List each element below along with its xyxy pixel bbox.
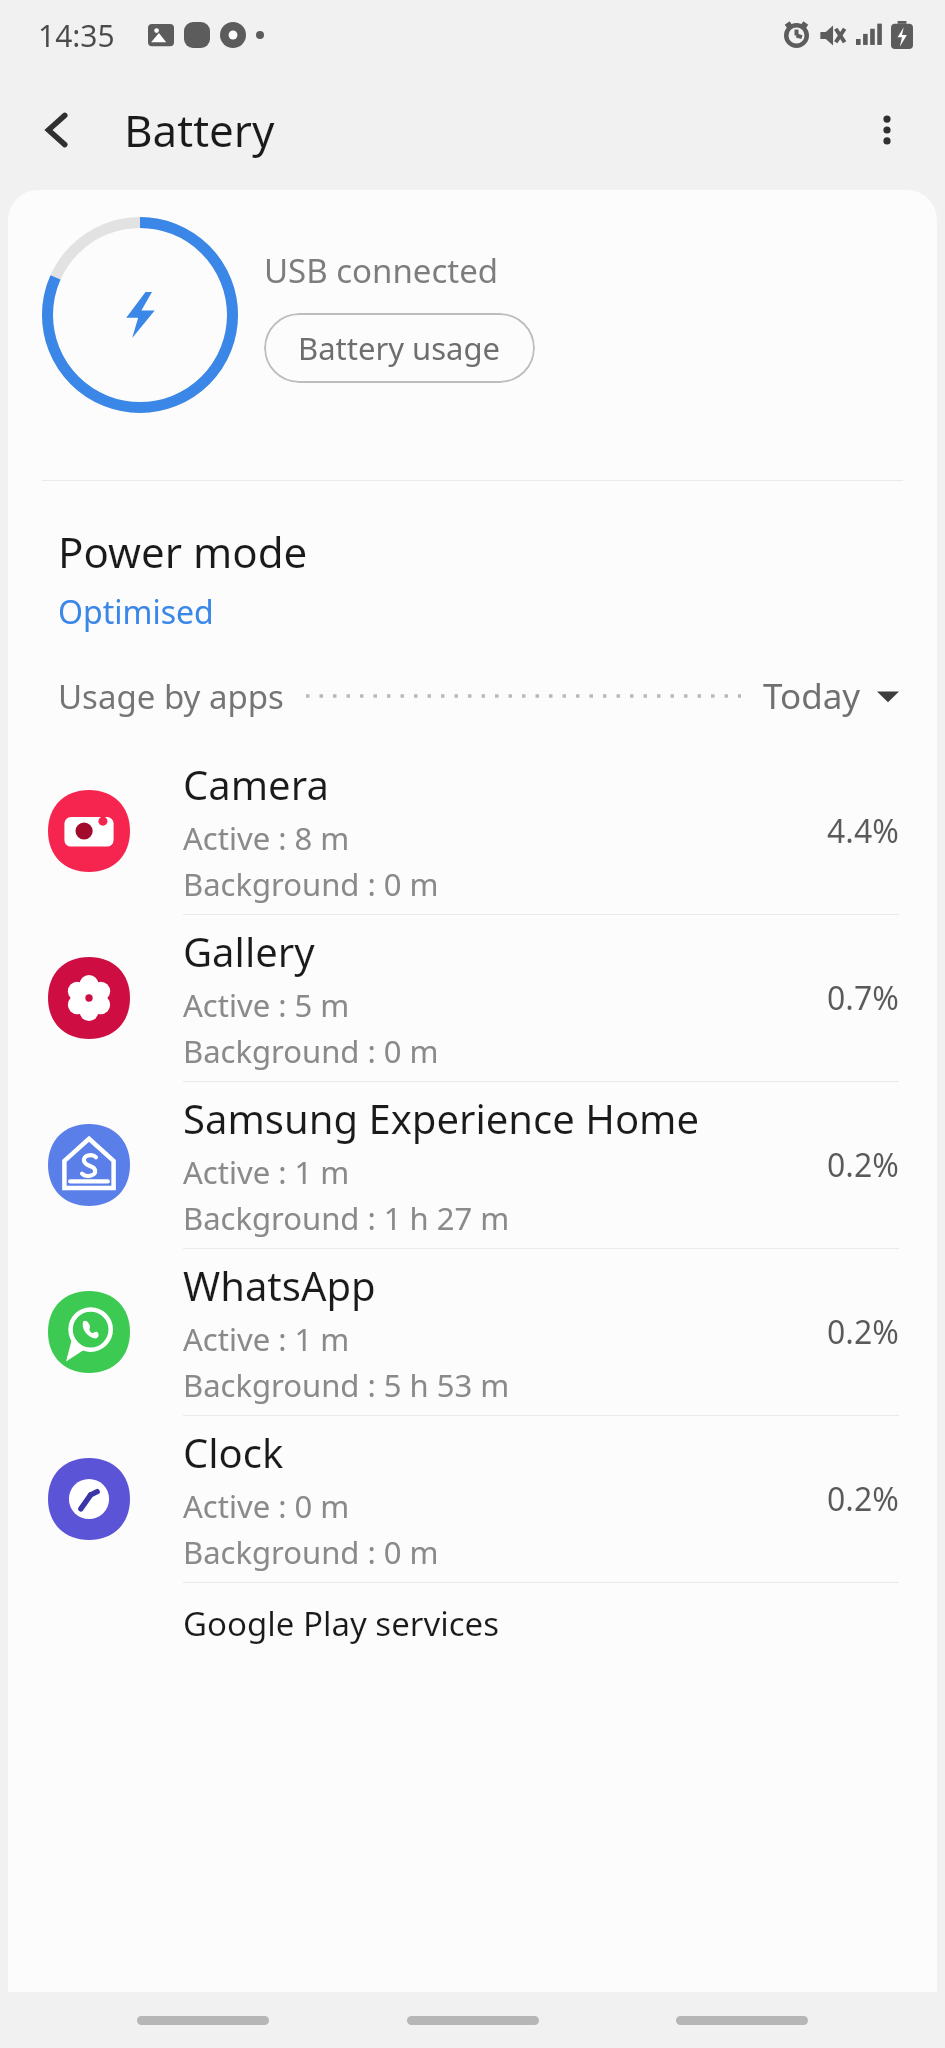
staticText: Gallery <box>183 924 315 978</box>
staticText: Background : 5 h 53 m <box>183 1364 510 1406</box>
staticText: 4.4% <box>827 809 899 853</box>
staticText: Samsung Experience Home <box>183 1091 700 1145</box>
button[interactable]: WhatsApp <box>8 1249 937 1415</box>
staticText: 0.2% <box>827 1310 899 1354</box>
staticText: Google Play services <box>183 1601 499 1646</box>
button[interactable]: Power mode <box>8 481 937 644</box>
button[interactable]: Back <box>22 94 94 166</box>
button[interactable]: Navigation <box>676 2016 808 2025</box>
staticText: Camera <box>183 757 329 811</box>
button[interactable]: Navigation <box>407 2016 539 2025</box>
button[interactable]: Clock <box>8 1416 937 1582</box>
staticText: Active : 0 m <box>183 1485 350 1527</box>
staticText: 0.2% <box>827 1143 899 1187</box>
button[interactable]: Camera <box>8 748 937 914</box>
staticText: 0.7% <box>827 976 899 1020</box>
staticText: 0.2% <box>827 1477 899 1521</box>
staticText: Optimised <box>58 590 214 634</box>
button[interactable]: Usage by apps <box>8 644 937 748</box>
staticText: Background : 0 m <box>183 863 439 905</box>
staticText: Active : 1 m <box>183 1151 350 1193</box>
staticText: USB connected <box>264 248 499 293</box>
button[interactable]: Samsung Experience Home <box>8 1082 937 1248</box>
button[interactable]: Navigation <box>137 2016 269 2025</box>
staticText: Usage by apps <box>58 674 284 719</box>
staticText: Clock <box>183 1425 284 1479</box>
staticText: WhatsApp <box>183 1258 376 1312</box>
staticText: Power mode <box>58 523 308 580</box>
staticText: Background : 0 m <box>183 1531 439 1573</box>
staticText: Background : 1 h 27 m <box>183 1197 510 1239</box>
button[interactable]: More options <box>851 94 923 166</box>
staticText: Battery <box>124 100 275 160</box>
button[interactable]: Gallery <box>8 915 937 1081</box>
staticText: Active : 5 m <box>183 984 350 1026</box>
staticText: Active : 8 m <box>183 817 350 859</box>
staticText: Today <box>763 672 861 720</box>
staticText: 14:35 <box>38 15 115 56</box>
staticText: Battery usage <box>298 327 501 369</box>
staticText: Active : 1 m <box>183 1318 350 1360</box>
button[interactable]: Battery usage <box>264 313 535 383</box>
staticText: Background : 0 m <box>183 1030 439 1072</box>
